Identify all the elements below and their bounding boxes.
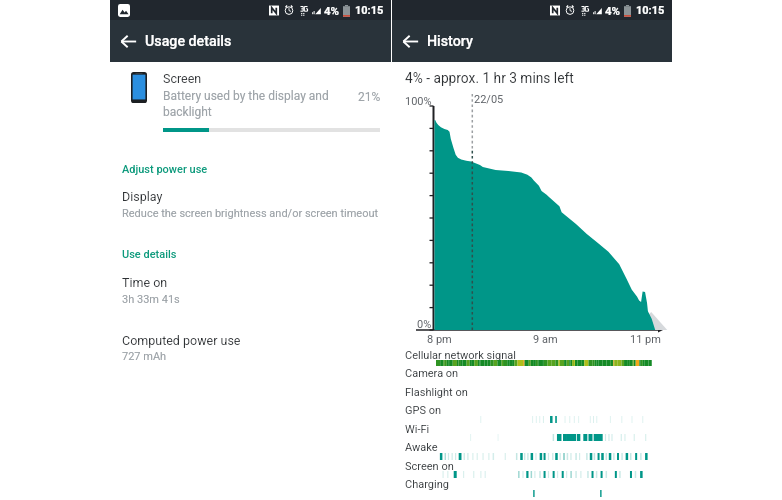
staticText: 8 pm <box>427 333 452 346</box>
staticText: Usage details <box>145 33 232 50</box>
staticText: 0% <box>417 318 432 331</box>
staticText: Adjust power use <box>122 163 208 176</box>
staticText: Use details <box>122 248 177 261</box>
staticText: GPS on <box>405 404 442 417</box>
staticText: Battery used by the display and backligh… <box>163 89 329 119</box>
staticText: Reduce the screen brightness and/or scre… <box>122 207 379 220</box>
staticText: History <box>427 33 473 50</box>
staticText: 3h 33m 41s <box>122 293 180 306</box>
staticText: 22/05 <box>474 93 504 106</box>
staticText: 727 mAh <box>122 350 167 363</box>
staticText: Cellular network signal <box>405 349 516 362</box>
staticText: Wi-Fi <box>405 423 430 436</box>
staticText: 11 pm <box>630 333 661 346</box>
staticText: Awake <box>405 441 438 454</box>
staticText: Computed power use <box>122 333 241 348</box>
staticText: Flashlight on <box>405 386 468 399</box>
staticText: 4% <box>605 4 621 17</box>
staticText: Screen on <box>405 460 454 473</box>
staticText: 4% <box>324 4 340 17</box>
button[interactable]: Back <box>392 20 429 62</box>
staticText: Charging <box>405 478 449 491</box>
button[interactable]: Back <box>110 20 147 62</box>
staticText: 4% - approx. 1 hr 3 mins left <box>405 70 574 86</box>
staticText: 9 am <box>533 333 558 346</box>
staticText: Screen <box>163 71 202 86</box>
staticText: Display <box>122 189 163 204</box>
staticText: 10:15 <box>355 4 384 17</box>
staticText: Camera on <box>405 367 459 380</box>
staticText: 10:15 <box>636 4 665 17</box>
staticText: 100% <box>405 95 432 108</box>
staticText: Time on <box>122 275 168 290</box>
staticText: 21% <box>358 90 381 104</box>
